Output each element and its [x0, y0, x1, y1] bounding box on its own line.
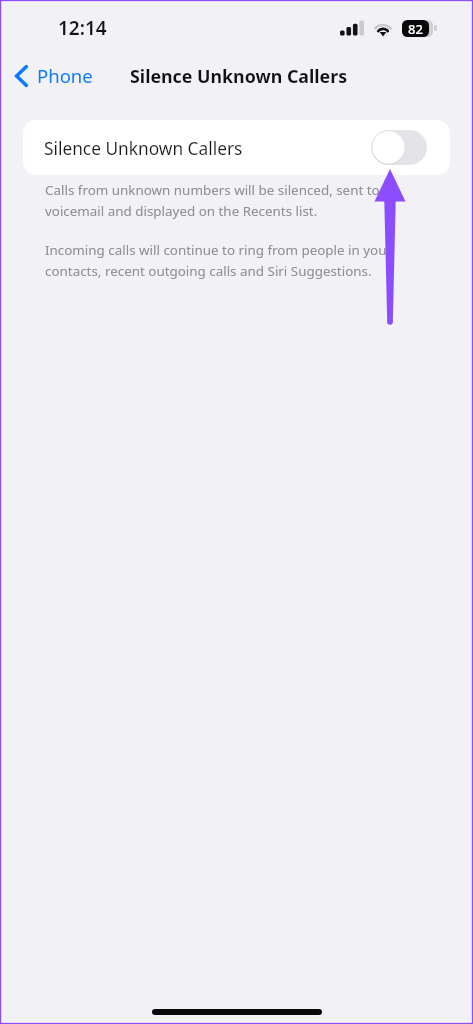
button[interactable]: Silence Unknown Callers: [23, 120, 450, 175]
staticText: Silence Unknown Callers: [130, 64, 348, 88]
button[interactable]: Silence Unknown Callers toggle: [371, 130, 427, 165]
staticText: Silence Unknown Callers: [44, 137, 243, 161]
staticText: Calls from unknown numbers will be silen…: [45, 181, 436, 220]
button[interactable]: Phone: [0, 59, 103, 92]
staticText: Incoming calls will continue to ring fro…: [45, 241, 436, 280]
staticText: 12:14: [58, 15, 107, 41]
staticText: Phone: [37, 63, 93, 88]
staticText: 82: [408, 20, 423, 37]
